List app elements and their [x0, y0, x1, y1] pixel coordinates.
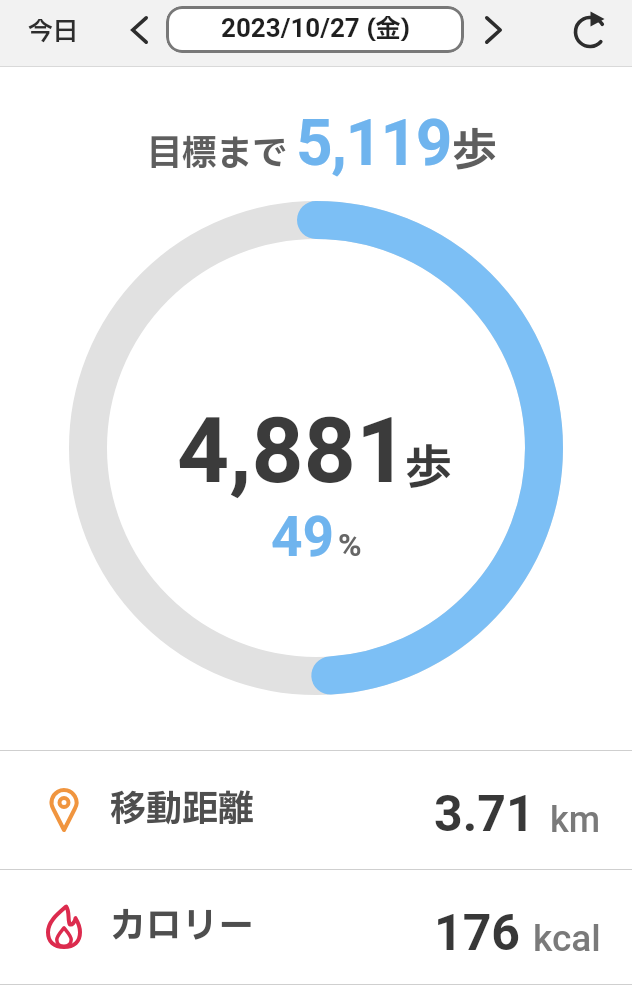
staticText: (金): [367, 11, 410, 48]
staticText: カロリー: [110, 900, 255, 954]
staticText: 今日: [28, 14, 79, 51]
staticText: 4,881: [177, 398, 409, 505]
button[interactable]: [475, 11, 512, 48]
staticText: %: [338, 526, 362, 564]
button[interactable]: 2023/10/27: [166, 6, 464, 53]
staticText: 49: [271, 505, 335, 569]
staticText: 2023/10/27: [221, 13, 367, 43]
staticText: 移動距離: [110, 783, 255, 837]
staticText: 歩: [452, 118, 498, 185]
staticText: 3.71: [434, 785, 535, 844]
button[interactable]: [121, 11, 158, 48]
staticText: 176: [434, 904, 521, 963]
staticText: 歩: [405, 434, 452, 504]
staticText: kcal: [533, 917, 601, 960]
staticText: km: [550, 799, 601, 841]
button[interactable]: カロリー: [0, 870, 632, 984]
staticText: 5,119: [296, 106, 452, 181]
button[interactable]: [567, 7, 611, 51]
button[interactable]: 移動距離: [0, 751, 632, 869]
staticText: 目標まで: [147, 128, 296, 180]
button[interactable]: 今日: [18, 8, 89, 57]
